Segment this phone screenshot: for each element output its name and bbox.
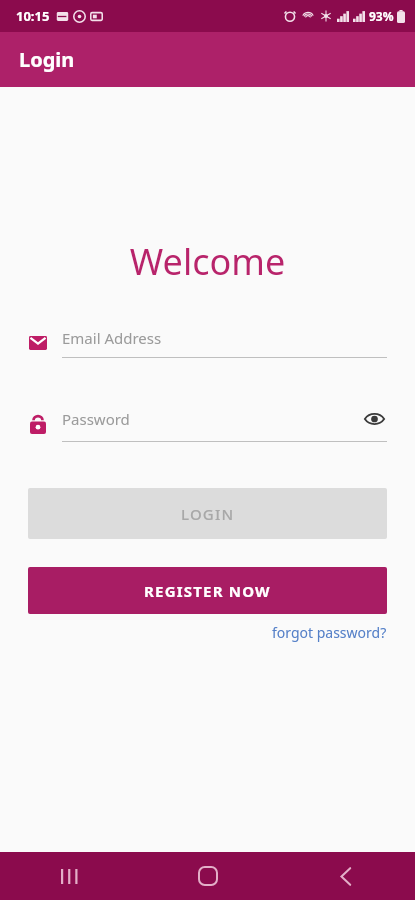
staticText: Password [62,409,361,429]
button[interactable]: REGISTER NOW [28,567,387,614]
button[interactable]: Show password [361,406,387,432]
staticText: LOGIN [181,504,235,524]
staticText: Login [19,46,75,73]
button[interactable]: Back [277,852,415,900]
button[interactable]: Email [28,328,387,358]
button[interactable]: Password [28,406,387,442]
staticText: REGISTER NOW [144,581,271,601]
button[interactable]: forgot password? [272,623,387,642]
staticText: 10:15 [16,7,50,25]
staticText: 93% [369,8,394,24]
button[interactable]: Home [139,852,277,900]
other: Password [28,414,48,434]
other: Email [28,333,48,353]
staticText: forgot password? [272,623,387,642]
staticText: Email Address [62,328,387,348]
button[interactable]: Recent apps [0,852,139,900]
button[interactable]: LOGIN [28,488,387,539]
staticText: Welcome [0,237,415,286]
